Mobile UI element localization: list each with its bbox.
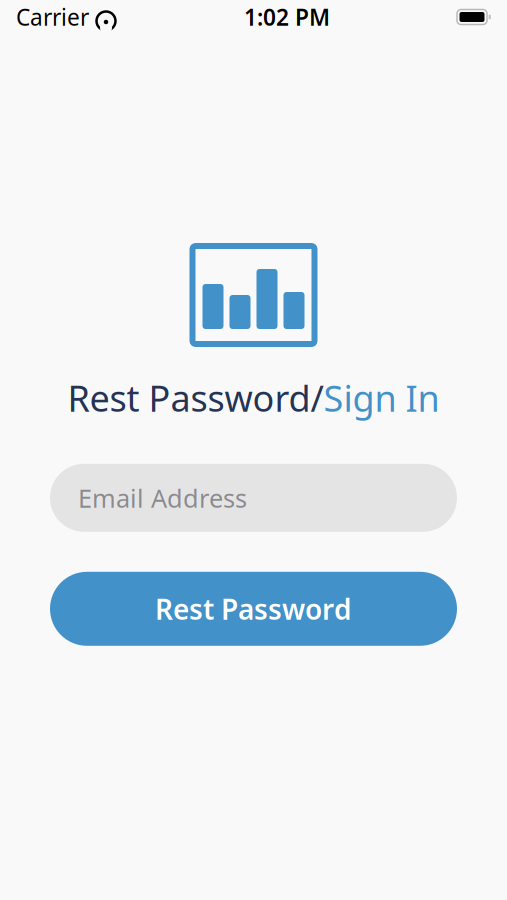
button[interactable]: Rest Password (50, 572, 457, 646)
staticText: Carrier (16, 2, 89, 32)
staticText: 1:02 PM (244, 2, 330, 32)
staticText: Email Address (78, 481, 247, 515)
staticText: Sign In (323, 374, 439, 422)
staticText: Rest Password (155, 590, 352, 627)
button[interactable]: Sign In (323, 374, 439, 422)
staticText: Rest Password/ (67, 374, 323, 422)
button[interactable]: Email Address (50, 464, 457, 532)
